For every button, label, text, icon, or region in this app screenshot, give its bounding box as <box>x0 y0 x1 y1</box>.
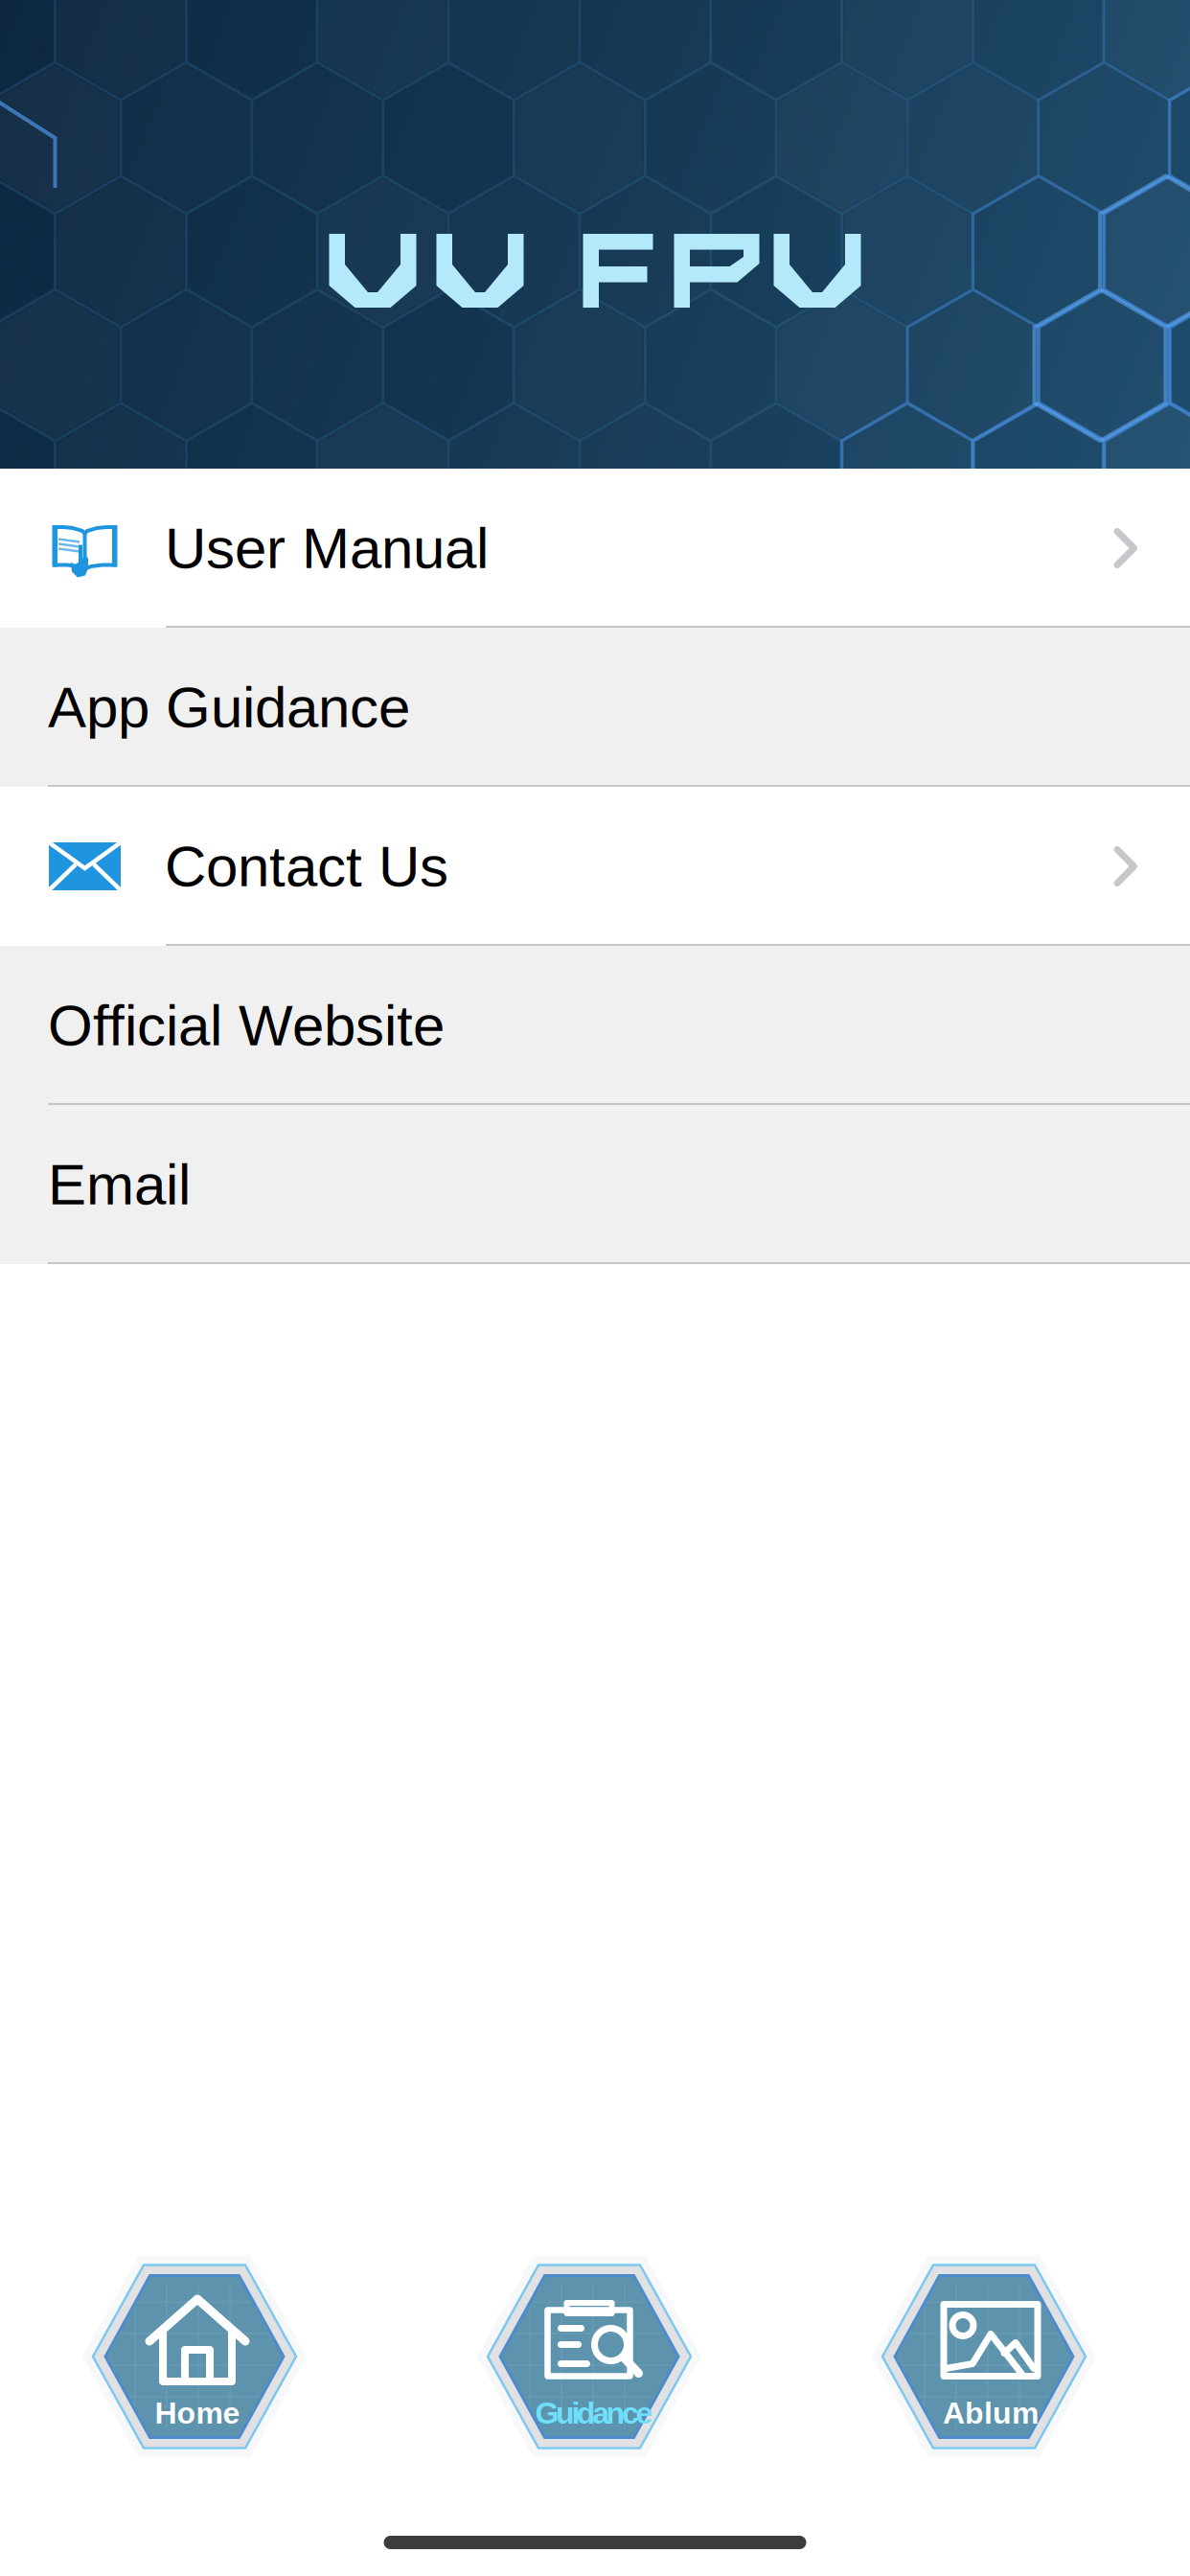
staticText: Guidance <box>535 2396 653 2430</box>
button[interactable]: Home <box>84 2246 305 2467</box>
staticText: User Manual <box>165 516 489 580</box>
button[interactable]: App Guidance <box>0 628 1190 787</box>
button[interactable]: Email <box>0 1105 1190 1264</box>
staticText: Ablum <box>943 2396 1039 2430</box>
button[interactable]: Guidance <box>479 2246 699 2467</box>
button[interactable]: Ablum <box>874 2246 1094 2467</box>
button[interactable]: User Manual <box>0 469 1190 628</box>
staticText: Email <box>48 1152 191 1217</box>
button[interactable]: Official Website <box>0 946 1190 1105</box>
button[interactable]: Contact Us <box>0 787 1190 946</box>
staticText: App Guidance <box>48 675 410 739</box>
staticText: Home <box>155 2396 240 2430</box>
staticText: Official Website <box>48 993 445 1058</box>
staticText: Contact Us <box>165 834 448 898</box>
